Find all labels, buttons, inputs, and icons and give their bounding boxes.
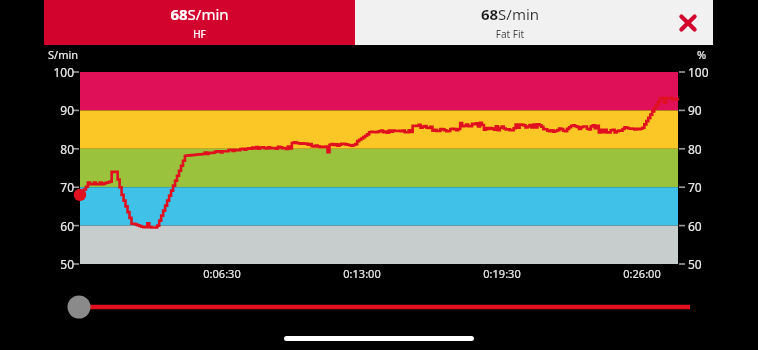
staticText: 100 — [688, 64, 718, 80]
staticText: HF — [44, 27, 355, 41]
staticText: 80 — [48, 141, 74, 157]
staticText: 68S/min — [44, 4, 355, 24]
button[interactable]: Close — [666, 0, 710, 45]
staticText: 0:26:00 — [612, 266, 672, 281]
staticText: 68S/min — [355, 4, 665, 24]
staticText: 70 — [48, 179, 74, 195]
staticText: 70 — [688, 179, 718, 195]
button[interactable]: 68S/min — [44, 0, 355, 45]
staticText: 50 — [48, 256, 74, 272]
staticText: S/min — [48, 47, 79, 62]
staticText: 0:13:00 — [332, 266, 392, 281]
staticText: 0:06:30 — [192, 266, 252, 281]
staticText: % — [697, 47, 707, 62]
staticText: 80 — [688, 141, 718, 157]
staticText: 0:19:30 — [472, 266, 532, 281]
staticText: 60 — [688, 218, 718, 234]
staticText: 90 — [48, 102, 74, 118]
staticText: 90 — [688, 102, 718, 118]
staticText: Fat Fit — [355, 27, 665, 41]
staticText: 50 — [688, 256, 718, 272]
button[interactable]: 68S/min — [355, 0, 713, 45]
button[interactable]: Timeline position — [60, 292, 700, 322]
staticText: 100 — [48, 64, 74, 80]
staticText: 60 — [48, 218, 74, 234]
